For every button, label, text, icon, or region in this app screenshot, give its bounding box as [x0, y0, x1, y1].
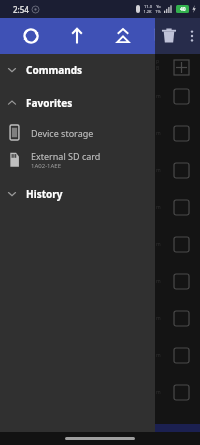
staticText: 1% [155, 9, 161, 14]
button[interactable]: Commands [0, 59, 155, 81]
button[interactable]: Device storage [0, 119, 155, 146]
staticText: m [156, 278, 161, 285]
button[interactable]: Help [154, 21, 155, 51]
staticText: m [156, 315, 161, 322]
button[interactable]: Favorites [0, 92, 155, 114]
staticText: Favorites [26, 96, 73, 110]
button[interactable]: History [0, 183, 155, 205]
staticText: m [156, 352, 161, 359]
staticText: p [156, 58, 160, 65]
staticText: B [156, 65, 160, 72]
staticText: External SD card [31, 150, 101, 162]
staticText: Yo [156, 4, 161, 9]
staticText: 1A02-1AEE [31, 162, 62, 170]
staticText: 11.0 [144, 4, 152, 9]
button[interactable]: Refresh [16, 21, 46, 51]
staticText: m [156, 167, 161, 174]
staticText: m [156, 241, 161, 248]
staticText: 1.2K [143, 9, 152, 14]
staticText: 2:54 [13, 4, 29, 15]
staticText: Device storage [31, 127, 94, 139]
button[interactable]: Navigate up [62, 21, 92, 51]
staticText: 40 [180, 6, 186, 13]
staticText: Commands [26, 63, 82, 77]
staticText: History [26, 187, 63, 201]
button[interactable]: External SD card [0, 146, 155, 173]
staticText: m [156, 93, 161, 100]
staticText: m [156, 389, 161, 396]
button[interactable]: Collapse all [108, 21, 138, 51]
button[interactable]: Delete [154, 21, 184, 51]
staticText: m [156, 130, 161, 137]
staticText: m [156, 204, 161, 211]
button[interactable]: More options [184, 21, 200, 51]
